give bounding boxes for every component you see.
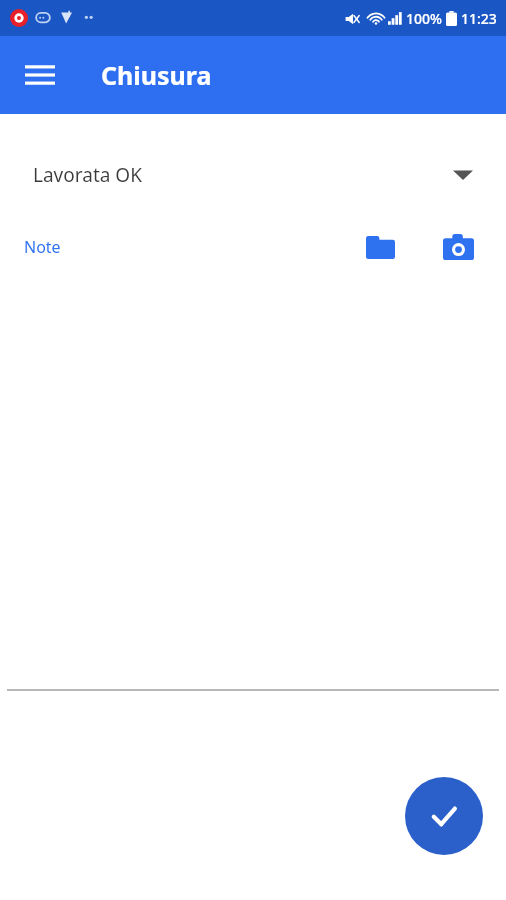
staticText: 11:23: [461, 9, 497, 28]
button[interactable]: Open folder: [358, 225, 402, 269]
staticText: Chiusura: [101, 58, 212, 92]
button[interactable]: Confirm: [405, 777, 483, 855]
button[interactable]: Open navigation menu: [12, 47, 68, 103]
staticText: 100%: [406, 9, 442, 28]
button[interactable]: Note: [24, 236, 61, 258]
button[interactable]: Take photo: [436, 225, 480, 269]
button[interactable]: Lavorata OK: [0, 152, 506, 198]
staticText: Lavorata OK: [33, 162, 142, 188]
